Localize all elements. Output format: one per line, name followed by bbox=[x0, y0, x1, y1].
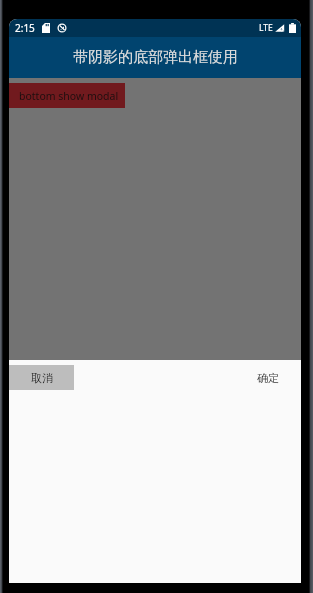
staticText: 2:15 bbox=[15, 21, 35, 35]
staticText: LTE bbox=[259, 22, 273, 34]
button[interactable]: Dismiss bottom sheet bbox=[9, 78, 301, 360]
staticText: 确定 bbox=[257, 371, 279, 385]
staticText: 取消 bbox=[31, 371, 53, 385]
staticText: bottom show modal bbox=[19, 89, 119, 103]
button[interactable]: 取消 bbox=[9, 365, 74, 390]
button[interactable]: bottom show modal bbox=[9, 83, 125, 108]
staticText: 带阴影的底部弹出框使用 bbox=[73, 48, 238, 67]
button[interactable]: 确定 bbox=[235, 365, 301, 390]
